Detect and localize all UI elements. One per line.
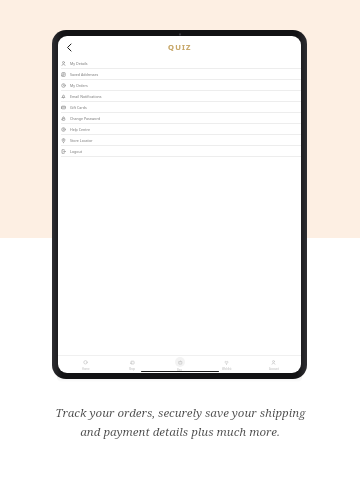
staticText: Gift Cards xyxy=(70,105,87,110)
button[interactable]: Help Centre xyxy=(58,124,301,135)
button[interactable]: Change Password xyxy=(58,113,301,124)
button[interactable]: Home xyxy=(62,356,109,373)
staticText: Email Notifications xyxy=(70,94,102,99)
button[interactable]: Account xyxy=(250,356,297,373)
button[interactable]: My Details xyxy=(58,58,301,69)
staticText: Account xyxy=(269,367,279,371)
button[interactable]: Back xyxy=(60,38,78,56)
staticText: Help Centre xyxy=(70,127,91,132)
staticText: Wishlist xyxy=(222,367,232,371)
staticText: Logout xyxy=(70,149,82,154)
staticText: Shop xyxy=(129,367,136,371)
button[interactable]: Bag xyxy=(156,356,203,373)
button[interactable]: Saved Addresses xyxy=(58,69,301,80)
staticText: My Details xyxy=(70,61,88,66)
staticText: Store Locator xyxy=(70,138,93,143)
button[interactable]: Email Notifications xyxy=(58,91,301,102)
staticText: Bag xyxy=(177,368,182,372)
staticText: QUIZ xyxy=(168,42,192,52)
button[interactable]: Store Locator xyxy=(58,135,301,146)
staticText: My Orders xyxy=(70,83,88,88)
staticText: Change Password xyxy=(70,116,101,121)
button[interactable]: Wishlist xyxy=(203,356,250,373)
staticText: and payment details plus much more. xyxy=(80,424,280,440)
button[interactable]: Shop xyxy=(109,356,156,373)
button[interactable]: Gift Cards xyxy=(58,102,301,113)
button[interactable]: My Orders xyxy=(58,80,301,91)
button[interactable]: Logout xyxy=(58,146,301,157)
staticText: Saved Addresses xyxy=(70,72,99,77)
staticText: Track your orders, securely save your sh… xyxy=(55,405,306,421)
staticText: Home xyxy=(82,367,90,371)
